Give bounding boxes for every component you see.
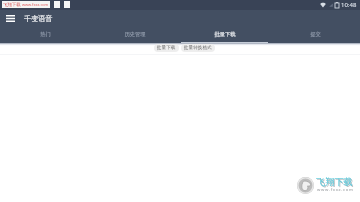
staticText: 飞翔下载 (316, 176, 353, 188)
staticText: www.fxxz.com (317, 187, 354, 193)
button[interactable]: 历史管理 (90, 32, 180, 43)
button[interactable]: 批量转换格式 (181, 44, 215, 52)
staticText: 批量转换格式 (184, 45, 212, 51)
staticText: 批量下载 (157, 45, 176, 51)
button[interactable]: 提交 (270, 32, 360, 43)
staticText: 飞翔下载 (317, 177, 354, 189)
staticText: 历史管理 (124, 31, 146, 38)
staticText: 批量下载 (214, 31, 236, 38)
button[interactable]: Open navigation menu (0, 10, 20, 32)
staticText: www.fxxz.com (22, 2, 49, 7)
staticText: 10:48 (341, 1, 357, 9)
staticText: 提交 (310, 31, 321, 38)
staticText: 飞翔下载 (3, 2, 21, 8)
button[interactable]: 热门 (0, 32, 90, 43)
button[interactable]: 批量下载 (154, 44, 179, 52)
staticText: 千变语音 (24, 14, 53, 23)
button[interactable]: 批量下载 (180, 32, 270, 43)
staticText: 热门 (40, 31, 51, 38)
